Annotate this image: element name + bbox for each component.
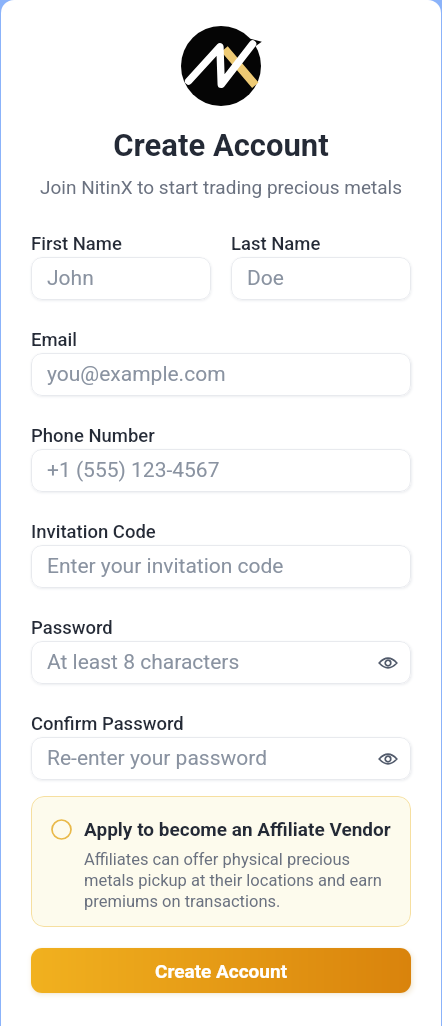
staticText: Apply to become an Affiliate Vendor [84,818,391,840]
staticText: Create Account [113,127,329,163]
staticText: John [47,266,94,291]
button[interactable]: At least 8 characters [31,641,411,684]
staticText: Last Name [231,233,321,253]
button[interactable]: Enter your invitation code [31,545,411,588]
button[interactable]: Apply to become an Affiliate Vendor [31,796,411,927]
button[interactable]: Create Account [31,948,411,993]
button[interactable]: Re-enter your password [31,737,411,780]
staticText: Create Account [155,960,288,982]
staticText: Phone Number [31,425,155,445]
staticText: Join NitinX to start trading precious me… [40,176,402,198]
staticText: Password [31,617,113,637]
button[interactable]: Show password [375,650,401,676]
button[interactable]: Doe [231,257,411,300]
button[interactable]: +1 (555) 123-4567 [31,449,411,492]
button[interactable]: Show password [375,746,401,772]
staticText: Affiliates can offer physical precious m… [84,850,395,911]
staticText: you@example.com [47,362,226,387]
button[interactable]: you@example.com [31,353,411,396]
staticText: +1 (555) 123-4567 [47,458,220,483]
button[interactable]: John [31,257,211,300]
staticText: Enter your invitation code [47,554,284,579]
staticText: Email [31,329,77,349]
staticText: Invitation Code [31,521,156,541]
staticText: Confirm Password [31,713,184,733]
staticText: Doe [247,266,284,291]
staticText: At least 8 characters [47,650,240,675]
staticText: Re-enter your password [47,746,268,771]
staticText: First Name [31,233,122,253]
